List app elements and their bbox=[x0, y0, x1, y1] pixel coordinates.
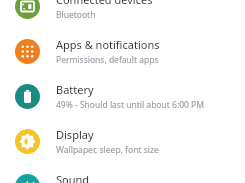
staticText: Apps & notifications bbox=[56, 37, 160, 52]
button[interactable]: Display bbox=[0, 119, 245, 164]
other: Sound bbox=[15, 174, 40, 183]
staticText: Connected devices bbox=[56, 0, 153, 7]
staticText: Bluetooth bbox=[56, 9, 96, 21]
button[interactable]: Battery bbox=[0, 74, 245, 119]
staticText: Display bbox=[56, 127, 94, 142]
staticText: 49% - Should last until about 6:00 PM bbox=[56, 99, 204, 111]
staticText: Wallpaper, sleep, font size bbox=[56, 144, 159, 156]
button[interactable]: Apps and notifications bbox=[0, 29, 245, 74]
staticText: Permissions, default apps bbox=[56, 54, 159, 66]
other: Battery bbox=[15, 84, 40, 109]
button[interactable]: Sound bbox=[0, 164, 245, 183]
other: Connected devices bbox=[15, 0, 40, 19]
other: Display bbox=[15, 129, 40, 154]
staticText: Battery bbox=[56, 82, 94, 97]
staticText: Sound bbox=[56, 172, 90, 183]
other: Apps and notifications bbox=[15, 39, 40, 64]
button[interactable]: Connected devices bbox=[0, 0, 245, 29]
